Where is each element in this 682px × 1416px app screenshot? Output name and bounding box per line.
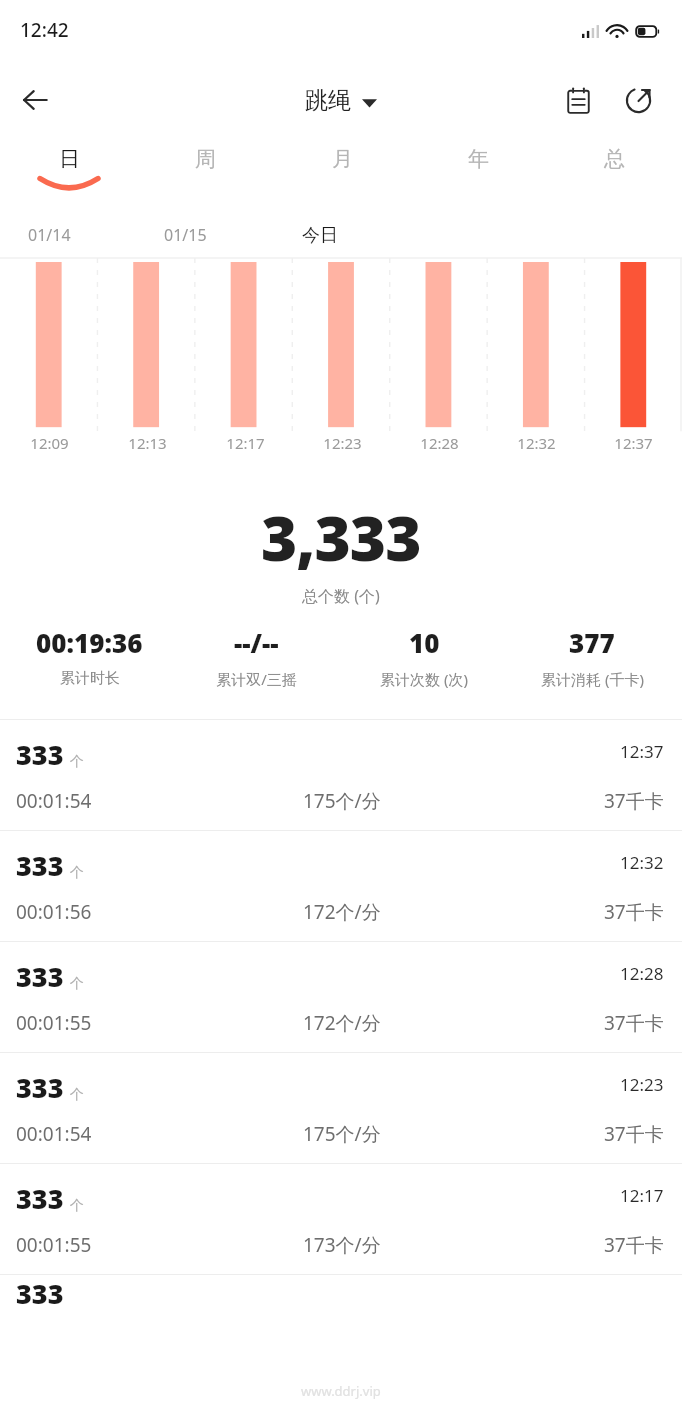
staticText: 12:37 (614, 433, 653, 453)
button[interactable]: Back (8, 73, 62, 127)
staticText: 00:01:54 (16, 1121, 92, 1147)
staticText: 个 (70, 1086, 84, 1104)
button[interactable]: 333 (0, 720, 682, 830)
staticText: 37千卡 (604, 1010, 664, 1036)
staticText: 00:01:55 (16, 1232, 92, 1258)
staticText: 今日 (302, 224, 338, 247)
button[interactable]: 月 (274, 138, 410, 214)
button[interactable]: Share (612, 74, 664, 126)
staticText: 总 (604, 146, 625, 172)
button[interactable]: 333 (0, 942, 682, 1052)
staticText: 377 (569, 625, 615, 660)
staticText: 333 (16, 847, 64, 884)
staticText: 累计次数 (次) (380, 669, 468, 689)
staticText: 日 (59, 146, 80, 172)
button[interactable]: 跳绳 (305, 86, 377, 115)
staticText: 12:32 (620, 851, 664, 874)
staticText: 3,333 (261, 495, 421, 579)
button[interactable]: 333 (0, 1053, 682, 1163)
staticText: 00:01:55 (16, 1010, 92, 1036)
staticText: 01/14 (28, 224, 71, 246)
staticText: www.ddrj.vip (301, 1382, 381, 1400)
staticText: 个 (70, 753, 84, 771)
staticText: 333 (16, 1069, 64, 1106)
staticText: 37千卡 (604, 788, 664, 814)
staticText: 01/15 (164, 224, 207, 246)
staticText: 333 (16, 1180, 64, 1217)
staticText: 累计消耗 (千卡) (541, 669, 644, 689)
staticText: 月 (332, 146, 353, 172)
button[interactable]: 333 (0, 1275, 682, 1309)
staticText: 12:42 (20, 17, 69, 43)
staticText: 00:19:36 (36, 625, 143, 660)
staticText: 172个/分 (303, 899, 381, 925)
button[interactable]: 年 (410, 138, 546, 214)
staticText: 12:23 (620, 1073, 664, 1096)
button[interactable]: 周 (137, 138, 274, 214)
staticText: 172个/分 (303, 1010, 381, 1036)
button[interactable]: 总 (546, 138, 682, 214)
staticText: 333 (16, 1275, 64, 1309)
button[interactable]: 日 (0, 138, 137, 214)
staticText: --/-- (234, 625, 279, 660)
staticText: 175个/分 (303, 788, 381, 814)
staticText: 00:01:56 (16, 899, 92, 925)
staticText: 12:09 (30, 433, 69, 453)
staticText: 12:17 (226, 433, 265, 453)
button[interactable]: Records (552, 74, 604, 126)
staticText: 37千卡 (604, 899, 664, 925)
staticText: 12:37 (620, 740, 664, 763)
staticText: 周 (195, 146, 216, 172)
staticText: 12:23 (323, 433, 362, 453)
staticText: 个 (70, 864, 84, 882)
staticText: 00:01:54 (16, 788, 92, 814)
staticText: 12:17 (620, 1184, 664, 1207)
staticText: 12:13 (128, 433, 167, 453)
staticText: 个 (70, 1197, 84, 1215)
staticText: 37千卡 (604, 1232, 664, 1258)
staticText: 个 (70, 975, 84, 993)
staticText: 12:32 (517, 433, 556, 453)
staticText: 173个/分 (303, 1232, 381, 1258)
button[interactable]: 333 (0, 831, 682, 941)
staticText: 年 (468, 146, 489, 172)
staticText: 累计双/三摇 (216, 669, 297, 689)
staticText: 37千卡 (604, 1121, 664, 1147)
button[interactable]: 333 (0, 1164, 682, 1274)
staticText: 333 (16, 736, 64, 773)
staticText: 333 (16, 958, 64, 995)
staticText: 12:28 (420, 433, 459, 453)
staticText: 12:28 (620, 962, 664, 985)
staticText: 跳绳 (305, 86, 351, 115)
staticText: 总个数 (个) (302, 585, 380, 607)
staticText: 175个/分 (303, 1121, 381, 1147)
staticText: 10 (409, 625, 440, 660)
staticText: 累计时长 (60, 669, 120, 688)
